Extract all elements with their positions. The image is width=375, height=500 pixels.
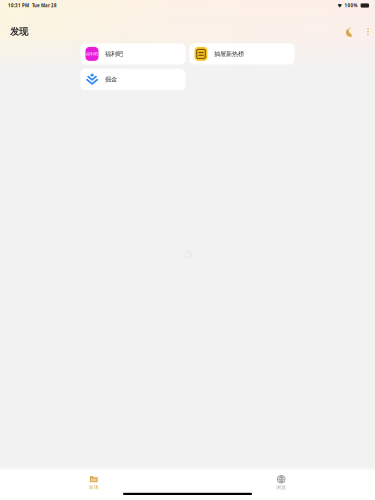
staticText: 浏览 <box>276 484 286 490</box>
button[interactable]: 浏览 <box>246 475 316 491</box>
button[interactable]: 抽屉新热榜 <box>189 43 294 64</box>
button[interactable]: 福利吧 <box>80 43 185 64</box>
button[interactable]: More options <box>362 23 374 40</box>
staticText: 抽屉新热榜 <box>214 50 244 58</box>
staticText: 掘金 <box>105 75 117 83</box>
staticText: 福利吧 <box>105 50 123 58</box>
staticText: 10:31 PM Tue Mar 28 <box>8 2 57 8</box>
staticText: 发现 <box>89 484 99 490</box>
staticText: 福利吧 <box>86 51 98 56</box>
staticText: 发现 <box>10 26 28 38</box>
button[interactable]: 掘金 <box>80 69 185 90</box>
button[interactable]: 发现 <box>59 475 129 491</box>
button[interactable]: Dark mode <box>341 23 358 40</box>
staticText: 100% <box>345 2 358 8</box>
